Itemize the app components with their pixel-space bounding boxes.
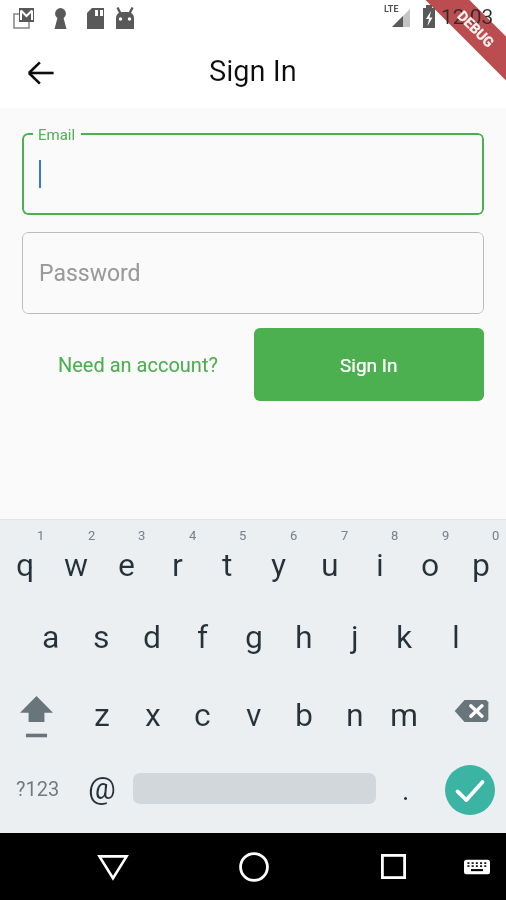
staticText: u — [321, 546, 339, 584]
button[interactable]: Space — [129, 764, 379, 826]
button[interactable]: 4 — [152, 525, 203, 591]
button[interactable]: n — [329, 682, 380, 748]
button[interactable]: 6 — [253, 525, 304, 591]
button[interactable]: Shift — [0, 682, 76, 748]
staticText: DEBUG — [454, 8, 497, 51]
staticText: 6 — [290, 528, 298, 543]
button[interactable]: k — [379, 604, 430, 670]
staticText: 4 — [189, 528, 197, 543]
staticText: g — [245, 618, 263, 656]
button[interactable]: h — [278, 604, 329, 670]
staticText: l — [452, 618, 460, 656]
button[interactable]: Password — [22, 232, 484, 314]
staticText: f — [197, 618, 209, 656]
staticText: Email — [38, 126, 76, 144]
staticText: ?123 — [16, 777, 60, 800]
button[interactable]: j — [329, 604, 380, 670]
staticText: x — [145, 696, 161, 734]
button[interactable]: d — [127, 604, 178, 670]
staticText: Password — [39, 260, 141, 287]
button[interactable]: Sign In — [254, 328, 484, 401]
staticText: 7 — [341, 528, 349, 543]
button[interactable]: x — [127, 682, 178, 748]
button[interactable]: v — [228, 682, 279, 748]
button[interactable]: Hide keyboard — [456, 846, 498, 888]
staticText: a — [42, 618, 60, 656]
button[interactable]: 0 — [455, 525, 506, 591]
staticText: i — [376, 546, 384, 584]
button[interactable]: 3 — [101, 525, 152, 591]
button[interactable]: 9 — [405, 525, 456, 591]
button[interactable]: g — [228, 604, 279, 670]
staticText: s — [93, 618, 110, 656]
button[interactable]: Recents — [369, 842, 418, 891]
staticText: b — [295, 696, 313, 734]
staticText: . — [402, 774, 410, 807]
staticText: j — [351, 618, 359, 656]
staticText: 5 — [239, 528, 247, 543]
button[interactable]: 5 — [202, 525, 253, 591]
button[interactable]: 7 — [304, 525, 355, 591]
button[interactable]: @ — [76, 764, 129, 826]
button[interactable]: Back — [88, 842, 137, 891]
staticText: 1 — [37, 528, 45, 543]
staticText: e — [118, 546, 135, 584]
staticText: m — [390, 696, 419, 734]
button[interactable]: f — [177, 604, 228, 670]
button[interactable]: Need an account? — [48, 343, 228, 386]
staticText: 3 — [138, 528, 146, 543]
button[interactable] — [22, 133, 484, 215]
staticText: 8 — [391, 528, 399, 543]
button[interactable]: Enter — [430, 764, 506, 826]
button[interactable]: m — [379, 682, 430, 748]
staticText: c — [194, 696, 211, 734]
button[interactable]: s — [76, 604, 127, 670]
staticText: p — [472, 546, 490, 584]
button[interactable]: ?123 — [0, 764, 76, 826]
staticText: q — [16, 546, 35, 584]
staticText: v — [246, 696, 262, 734]
staticText: Sign In — [340, 354, 398, 376]
staticText: 2 — [88, 528, 96, 543]
staticText: d — [143, 618, 162, 656]
button[interactable]: Home — [229, 842, 278, 891]
staticText: 12:03 — [441, 5, 494, 30]
button[interactable]: 1 — [0, 525, 51, 591]
staticText: h — [295, 618, 313, 656]
staticText: z — [94, 696, 110, 734]
staticText: t — [222, 546, 233, 584]
staticText: 9 — [442, 528, 450, 543]
staticText: Sign In — [209, 54, 297, 88]
button[interactable]: l — [430, 604, 481, 670]
staticText: y — [271, 546, 287, 584]
staticText: r — [172, 546, 183, 584]
staticText: 0 — [492, 528, 500, 543]
staticText: @ — [88, 770, 116, 806]
button[interactable]: Backspace — [430, 682, 506, 748]
button[interactable]: z — [76, 682, 127, 748]
staticText: Need an account? — [58, 353, 218, 376]
button[interactable]: Back — [16, 47, 64, 95]
staticText: k — [396, 618, 413, 656]
staticText: o — [421, 546, 440, 584]
button[interactable]: b — [278, 682, 329, 748]
staticText: n — [346, 696, 364, 734]
button[interactable]: a — [25, 604, 76, 670]
staticText: LTE — [384, 4, 399, 15]
button[interactable]: . — [379, 764, 430, 826]
button[interactable]: c — [177, 682, 228, 748]
staticText: w — [64, 546, 89, 584]
button[interactable]: 2 — [51, 525, 102, 591]
button[interactable]: 8 — [354, 525, 405, 591]
